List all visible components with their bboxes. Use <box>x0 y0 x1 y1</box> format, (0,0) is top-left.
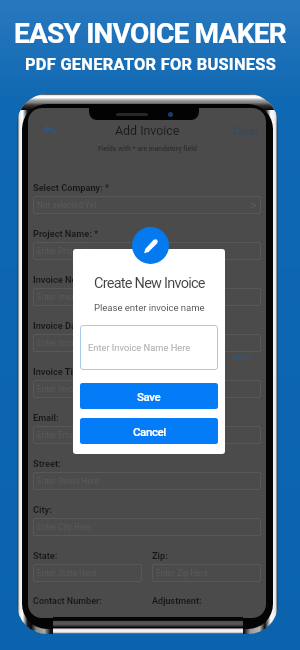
button[interactable]: Cancel <box>80 418 218 444</box>
staticText: Clear <box>233 124 259 137</box>
button[interactable]: Enter Invoice Date <box>33 334 261 352</box>
button[interactable]: Enter Invoice Title <box>33 380 261 398</box>
button[interactable]: Enter City Here <box>33 518 261 536</box>
staticText: Zip: <box>152 550 168 561</box>
staticText: omer <box>233 353 252 362</box>
staticText: Create New Invoice <box>94 275 205 292</box>
staticText: Project Name: * <box>33 228 99 239</box>
button[interactable]: Save <box>80 383 218 409</box>
staticText: Save <box>137 390 161 403</box>
staticText: Add Invoice <box>115 123 180 138</box>
button[interactable]: Clear <box>231 124 261 137</box>
staticText: Enter Invoice Date <box>37 338 103 348</box>
staticText: Invoice Title: <box>33 366 87 377</box>
staticText: State: <box>33 550 58 561</box>
staticText: PDF GENERATOR FOR BUSINESS <box>25 55 276 74</box>
staticText: Adjustment: <box>152 596 202 607</box>
button[interactable]: Enter State Here <box>33 564 142 582</box>
staticText: Enter Invoice Title <box>37 384 102 394</box>
staticText: Contact Number: <box>33 596 102 607</box>
staticText: Enter Invoice No <box>37 292 97 302</box>
button[interactable]: Enter Email Here <box>33 426 261 444</box>
staticText: Invoice Date: * <box>33 320 94 331</box>
button[interactable]: Enter Invoice Name Here <box>80 325 218 370</box>
button[interactable]: Enter Invoice No <box>33 288 261 306</box>
staticText: Select Company: * <box>33 182 110 193</box>
staticText: Please enter invoice name <box>94 302 205 313</box>
staticText: City: <box>33 504 52 515</box>
staticText: Cancel <box>133 425 166 438</box>
staticText: Enter Street Here <box>37 476 99 486</box>
button[interactable]: Not selected Yet <box>33 196 261 214</box>
staticText: Street: <box>33 458 61 469</box>
staticText: Invoice No: * <box>33 274 86 285</box>
staticText: Enter State Here <box>37 568 97 578</box>
staticText: Enter City Here <box>37 522 92 532</box>
staticText: Email: <box>33 412 59 423</box>
staticText: EASY INVOICE MAKER <box>14 17 286 50</box>
staticText: Enter Email Here <box>37 430 98 440</box>
staticText: Not selected Yet <box>37 200 97 210</box>
staticText: Enter Project Name <box>37 246 108 256</box>
button[interactable]: Back <box>40 121 58 139</box>
staticText: Fields with * are mandatory field <box>98 145 197 153</box>
button[interactable]: Enter Street Here <box>33 472 261 490</box>
button[interactable]: Edit invoice name <box>132 227 169 264</box>
button[interactable]: Enter Project Name <box>33 242 261 260</box>
button[interactable]: Enter Zip Here <box>152 564 261 582</box>
staticText: Enter Zip Here <box>156 568 208 578</box>
staticText: Enter Invoice Name Here <box>88 342 191 353</box>
